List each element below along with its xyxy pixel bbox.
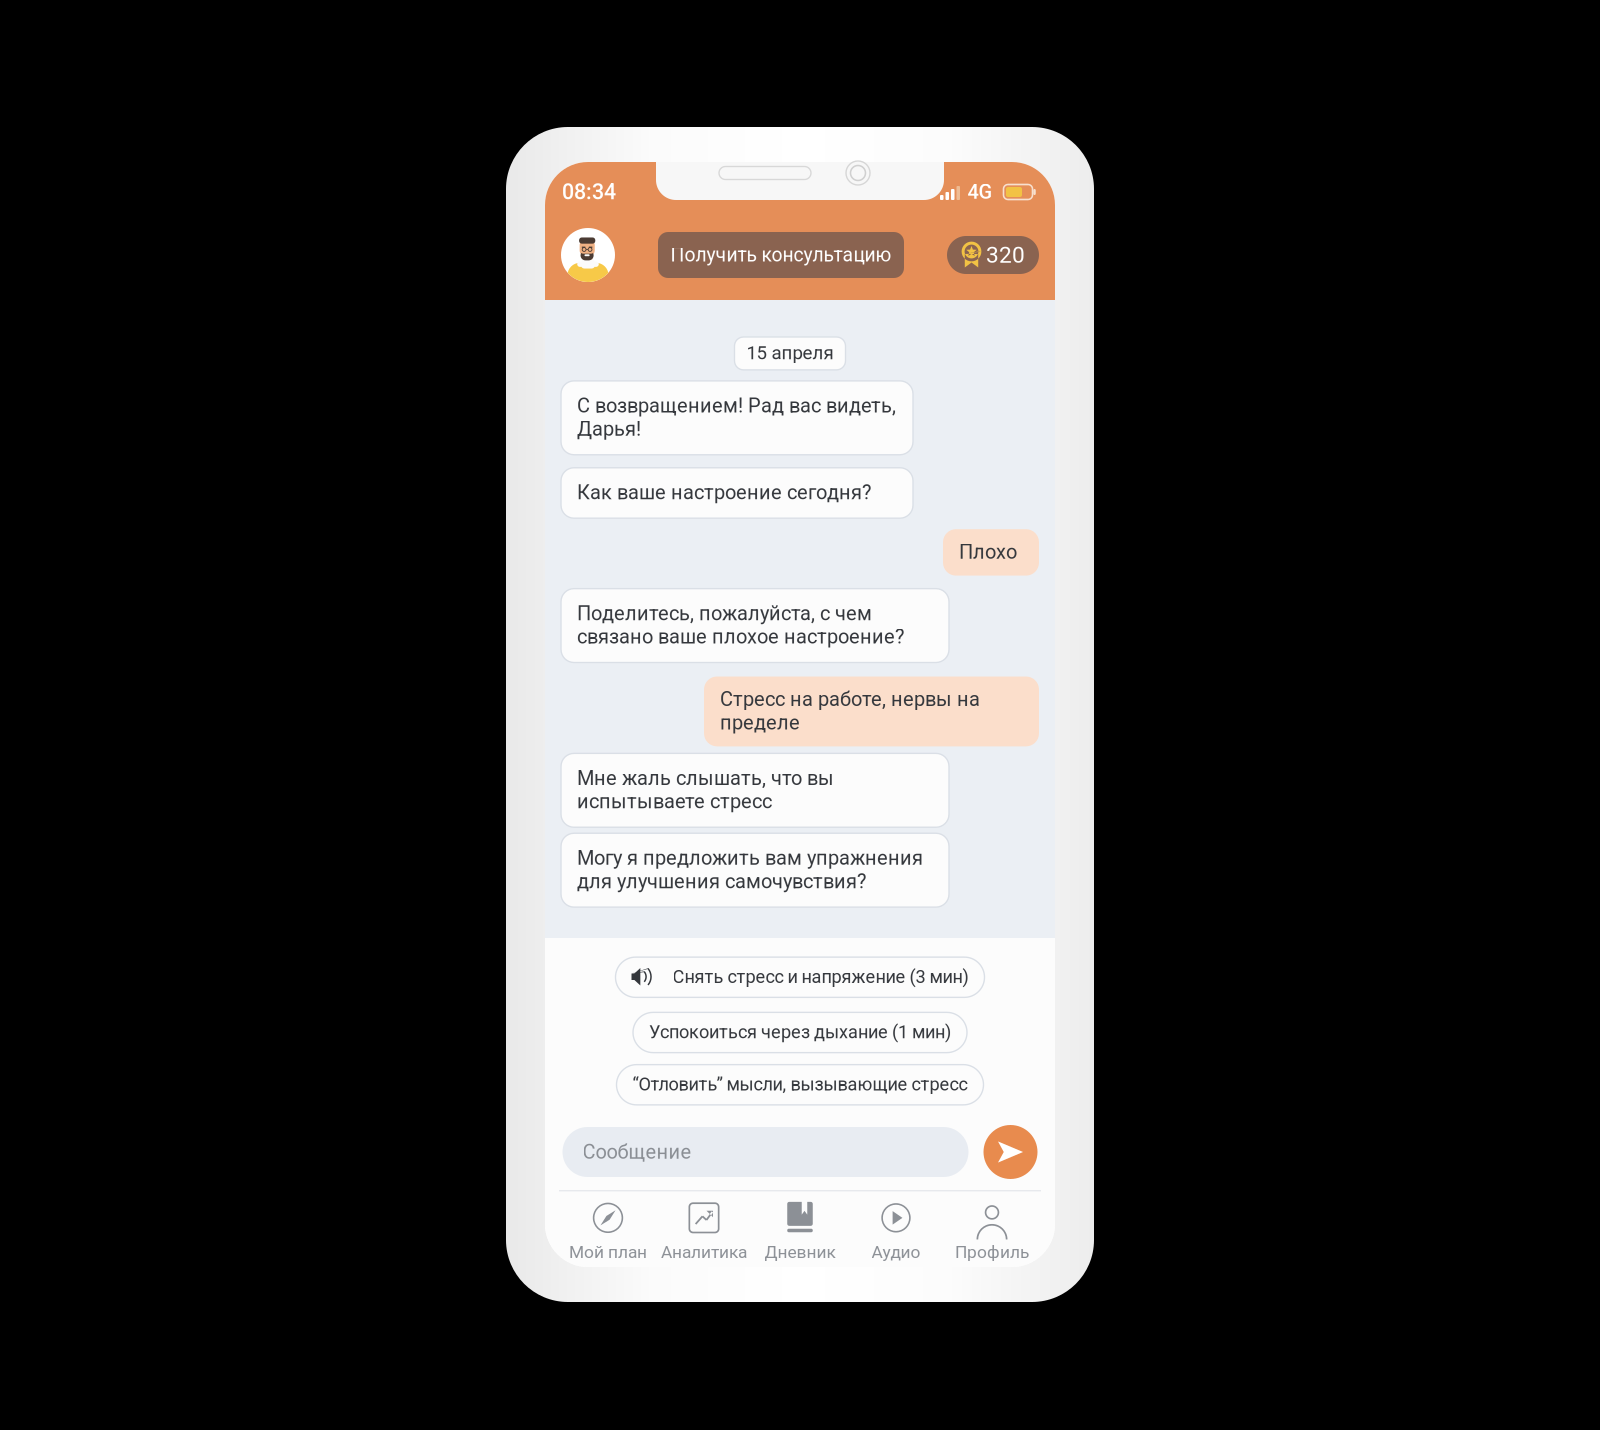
staticText: Могу я предложить вам упражнения для улу…: [577, 846, 923, 893]
button[interactable]: Аудио: [848, 1203, 944, 1261]
staticText: Аналитика: [661, 1242, 747, 1262]
staticText: 08:34: [562, 179, 616, 204]
button[interactable]: “Отловить” мысли, вызывающие стресс: [616, 1065, 983, 1105]
staticText: Сообщение: [582, 1140, 691, 1164]
button[interactable]: Отправить: [983, 1125, 1037, 1179]
staticText: 4G: [967, 180, 992, 204]
button[interactable]: Мой план: [560, 1203, 656, 1261]
staticText: “Отловить” мысли, вызывающие стресс: [632, 1074, 967, 1095]
button[interactable]: 320 баллов: [947, 236, 1039, 274]
staticText: Плохо: [959, 540, 1017, 564]
staticText: Получить консультацию: [670, 244, 891, 266]
staticText: 320: [986, 242, 1025, 268]
staticText: С возвращением! Рад вас видеть, Дарья!: [577, 394, 896, 441]
staticText: Аудио: [871, 1242, 920, 1262]
button[interactable]: Дневник: [752, 1203, 848, 1261]
staticText: Поделитесь, пожалуйста, с чем связано ва…: [577, 602, 904, 648]
staticText: Стресс на работе, нервы на пределе: [720, 687, 980, 734]
button[interactable]: Получить консультацию: [658, 232, 904, 278]
button[interactable]: Профиль: [944, 1203, 1040, 1261]
staticText: Дневник: [764, 1242, 835, 1262]
staticText: Профиль: [955, 1242, 1029, 1262]
button[interactable]: Успокоиться через дыхание (1 мин): [633, 1012, 967, 1053]
staticText: 15 апреля: [746, 342, 833, 364]
button[interactable]: Аналитика: [656, 1203, 752, 1261]
staticText: Снять стресс и напряжение (3 мин): [672, 966, 968, 987]
staticText: Успокоиться через дыхание (1 мин): [649, 1021, 951, 1043]
staticText: Как ваше настроение сегодня?: [577, 481, 871, 504]
button[interactable]: Профиль: [561, 228, 615, 282]
button[interactable]: Снять стресс и напряжение (3 мин): [615, 957, 984, 997]
staticText: Мне жаль слышать, что вы испытываете стр…: [577, 766, 834, 813]
staticText: Мой план: [569, 1242, 647, 1262]
